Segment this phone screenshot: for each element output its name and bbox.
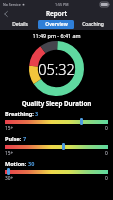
staticText: 0 bbox=[105, 175, 108, 182]
staticText: 1:55 PM bbox=[55, 2, 69, 7]
staticText: Details bbox=[12, 21, 28, 28]
button[interactable]: Coaching bbox=[76, 20, 109, 29]
staticText: 3 bbox=[35, 110, 39, 117]
button[interactable]: Back bbox=[1, 8, 11, 19]
staticText: 7 bbox=[23, 135, 27, 142]
staticText: 15+ bbox=[5, 125, 14, 132]
staticText: 0 bbox=[105, 125, 108, 132]
staticText: Breathing: bbox=[5, 110, 34, 117]
button[interactable]: Breathing: bbox=[5, 110, 108, 132]
staticText: 30 bbox=[28, 160, 35, 167]
staticText: 15+ bbox=[5, 150, 14, 157]
button[interactable]: Pulse: bbox=[5, 135, 108, 157]
staticText: 05:32 bbox=[38, 59, 75, 79]
staticText: 11:49 pm - 6:41 am bbox=[0, 32, 113, 39]
button[interactable]: Details bbox=[4, 20, 36, 29]
button[interactable]: Overview bbox=[38, 20, 74, 29]
staticText: Report bbox=[0, 9, 113, 18]
button[interactable]: Motion: bbox=[5, 160, 108, 182]
staticText: No Service bbox=[3, 2, 21, 7]
staticText: Overview bbox=[45, 21, 68, 28]
staticText: 30+ bbox=[5, 175, 14, 182]
staticText: 0 bbox=[105, 150, 108, 157]
staticText: Pulse: bbox=[5, 135, 22, 142]
staticText: Quality Sleep Duration bbox=[0, 99, 113, 107]
staticText: Coaching bbox=[82, 21, 104, 28]
staticText: Motion: bbox=[5, 160, 27, 167]
